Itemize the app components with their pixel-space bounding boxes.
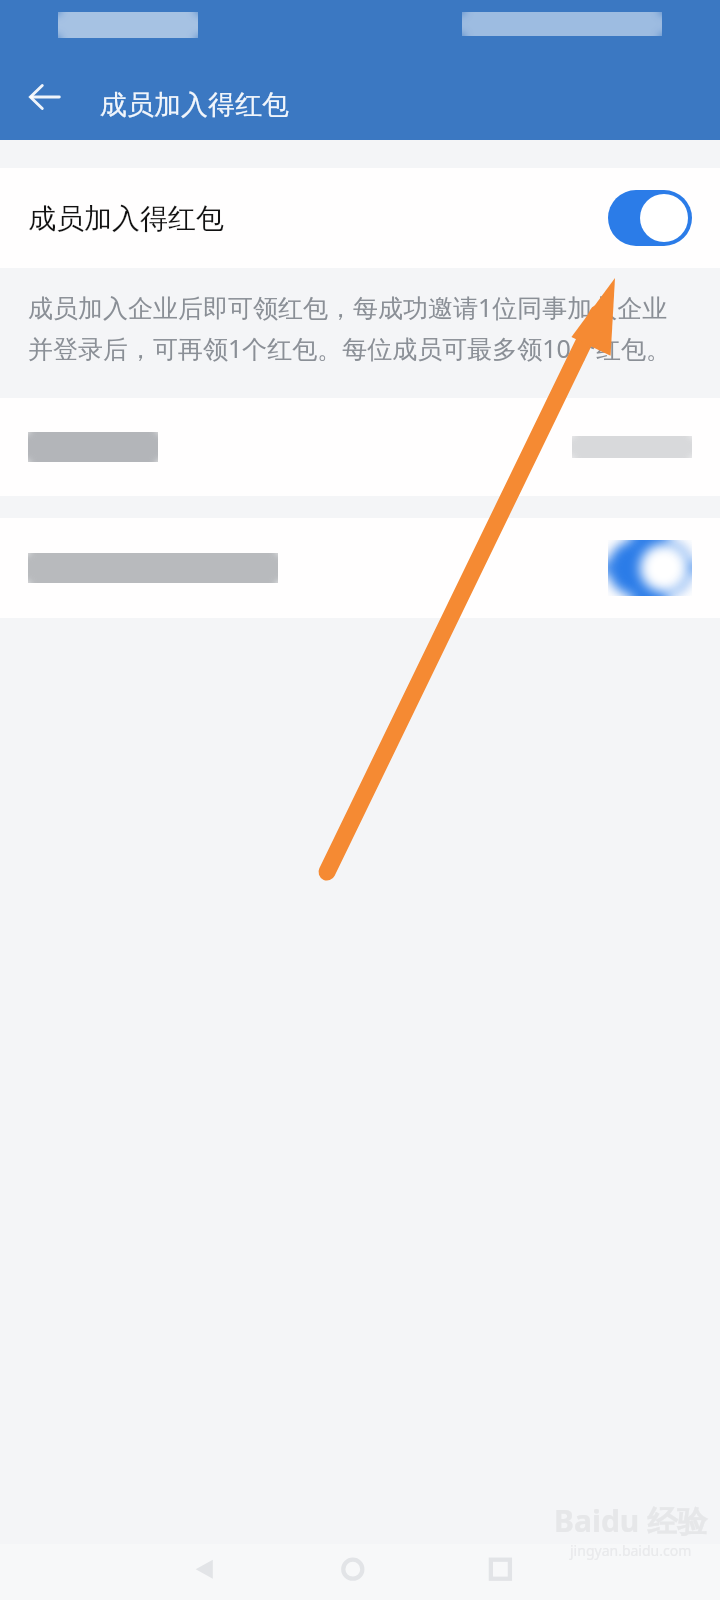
button[interactable]: Toggle — [0, 518, 720, 618]
staticText: 成员加入得红包 — [28, 201, 224, 236]
staticText: 成员加入企业后即可领红包，每成功邀请1位同事加入企业并登录后，可再领1个红包。每… — [28, 290, 692, 366]
button[interactable]: Toggle — [608, 540, 692, 596]
button[interactable]: 成员加入得红包 — [0, 168, 720, 268]
staticText: 成员加入得红包 — [100, 88, 289, 122]
button[interactable] — [0, 398, 720, 496]
staticText: jingyan.baidu.com — [570, 1541, 692, 1560]
button[interactable]: Back — [14, 66, 76, 128]
button[interactable]: Toggle — [608, 190, 692, 246]
staticText: Baidu 经验 — [554, 1500, 708, 1541]
